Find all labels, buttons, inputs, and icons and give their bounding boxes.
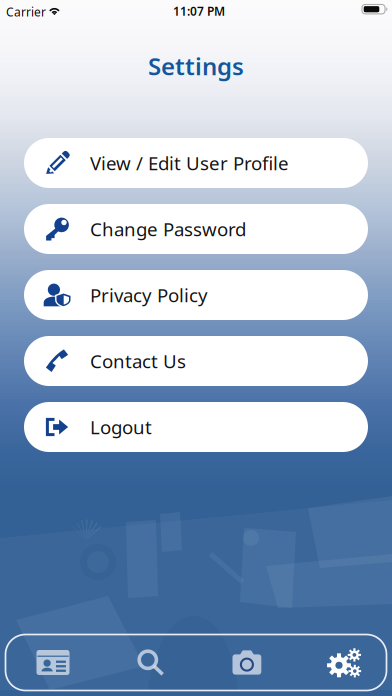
button[interactable]: View / Edit User Profile bbox=[24, 138, 368, 188]
staticText: Carrier bbox=[6, 4, 46, 20]
staticText: Logout bbox=[90, 415, 152, 439]
staticText: 11:07 PM bbox=[173, 3, 225, 19]
button[interactable]: Contact Us bbox=[24, 336, 368, 386]
staticText: Settings bbox=[148, 50, 244, 82]
button[interactable]: Settings bbox=[315, 634, 375, 690]
staticText: View / Edit User Profile bbox=[90, 151, 289, 175]
button[interactable]: Privacy Policy bbox=[24, 270, 368, 320]
staticText: Change Password bbox=[90, 217, 246, 241]
button[interactable]: Search bbox=[121, 634, 181, 690]
button[interactable]: Logout bbox=[24, 402, 368, 452]
button[interactable]: Camera bbox=[217, 634, 277, 690]
staticText: Privacy Policy bbox=[90, 283, 208, 307]
staticText: Contact Us bbox=[90, 349, 186, 373]
button[interactable]: Contacts bbox=[23, 634, 83, 690]
button[interactable]: Change Password bbox=[24, 204, 368, 254]
